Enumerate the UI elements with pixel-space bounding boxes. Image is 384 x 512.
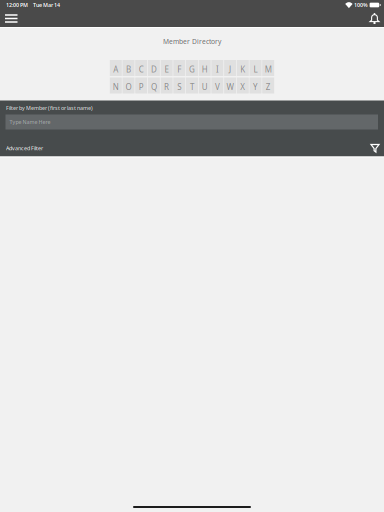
staticText: X bbox=[240, 82, 245, 92]
staticText: Filter by Member (first or last name) bbox=[6, 104, 93, 111]
staticText: M bbox=[265, 64, 272, 75]
button[interactable]: R bbox=[161, 77, 173, 93]
staticText: J bbox=[229, 64, 231, 75]
staticText: Tue Mar 14 bbox=[33, 1, 60, 9]
button[interactable]: Advanced Filter bbox=[0, 129, 384, 156]
staticText: U bbox=[202, 82, 208, 92]
staticText: Advanced Filter bbox=[6, 145, 43, 152]
button[interactable]: K bbox=[237, 60, 249, 76]
button[interactable]: Z bbox=[262, 77, 274, 93]
button[interactable]: Notifications bbox=[370, 10, 384, 27]
button[interactable]: H bbox=[199, 60, 211, 76]
staticText: P bbox=[139, 82, 144, 92]
button[interactable]: Y bbox=[249, 77, 261, 93]
staticText: A bbox=[113, 64, 118, 75]
button[interactable]: N bbox=[110, 77, 122, 93]
button[interactable]: Q bbox=[148, 77, 160, 93]
staticText: 100% bbox=[354, 1, 368, 9]
staticText: S bbox=[177, 82, 181, 92]
staticText: W bbox=[227, 82, 234, 92]
staticText: G bbox=[189, 64, 195, 75]
staticText: Member Directory bbox=[163, 37, 221, 46]
staticText: I bbox=[216, 64, 219, 75]
button[interactable]: M bbox=[262, 60, 274, 76]
button[interactable]: W bbox=[224, 77, 236, 93]
staticText: Type Name Here bbox=[9, 118, 50, 126]
button[interactable]: F bbox=[173, 60, 185, 76]
staticText: F bbox=[177, 64, 181, 75]
button[interactable]: C bbox=[135, 60, 147, 76]
button[interactable]: L bbox=[249, 60, 261, 76]
button[interactable]: B bbox=[122, 60, 134, 76]
button[interactable]: Menu bbox=[0, 10, 23, 27]
staticText: 12:00 PM bbox=[6, 1, 28, 9]
staticText: Z bbox=[266, 82, 271, 92]
button[interactable]: U bbox=[199, 77, 211, 93]
button[interactable]: I bbox=[211, 60, 223, 76]
staticText: B bbox=[126, 64, 131, 75]
button[interactable]: A bbox=[110, 60, 122, 76]
staticText: Q bbox=[151, 82, 157, 92]
button[interactable]: V bbox=[211, 77, 223, 93]
button[interactable]: S bbox=[173, 77, 185, 93]
staticText: O bbox=[125, 82, 131, 92]
staticText: H bbox=[202, 64, 208, 75]
staticText: N bbox=[113, 82, 119, 92]
button[interactable]: J bbox=[224, 60, 236, 76]
staticText: C bbox=[139, 64, 144, 75]
button[interactable]: D bbox=[148, 60, 160, 76]
staticText: R bbox=[164, 82, 169, 92]
staticText: E bbox=[165, 64, 169, 75]
staticText: Y bbox=[253, 82, 258, 92]
staticText: L bbox=[253, 64, 257, 75]
button[interactable]: G bbox=[186, 60, 198, 76]
staticText: T bbox=[190, 82, 194, 92]
button[interactable]: P bbox=[135, 77, 147, 93]
staticText: D bbox=[151, 64, 157, 75]
button[interactable]: O bbox=[122, 77, 134, 93]
staticText: V bbox=[215, 82, 220, 92]
staticText: K bbox=[240, 64, 245, 75]
button[interactable]: E bbox=[161, 60, 173, 76]
button[interactable]: X bbox=[237, 77, 249, 93]
button[interactable]: T bbox=[186, 77, 198, 93]
